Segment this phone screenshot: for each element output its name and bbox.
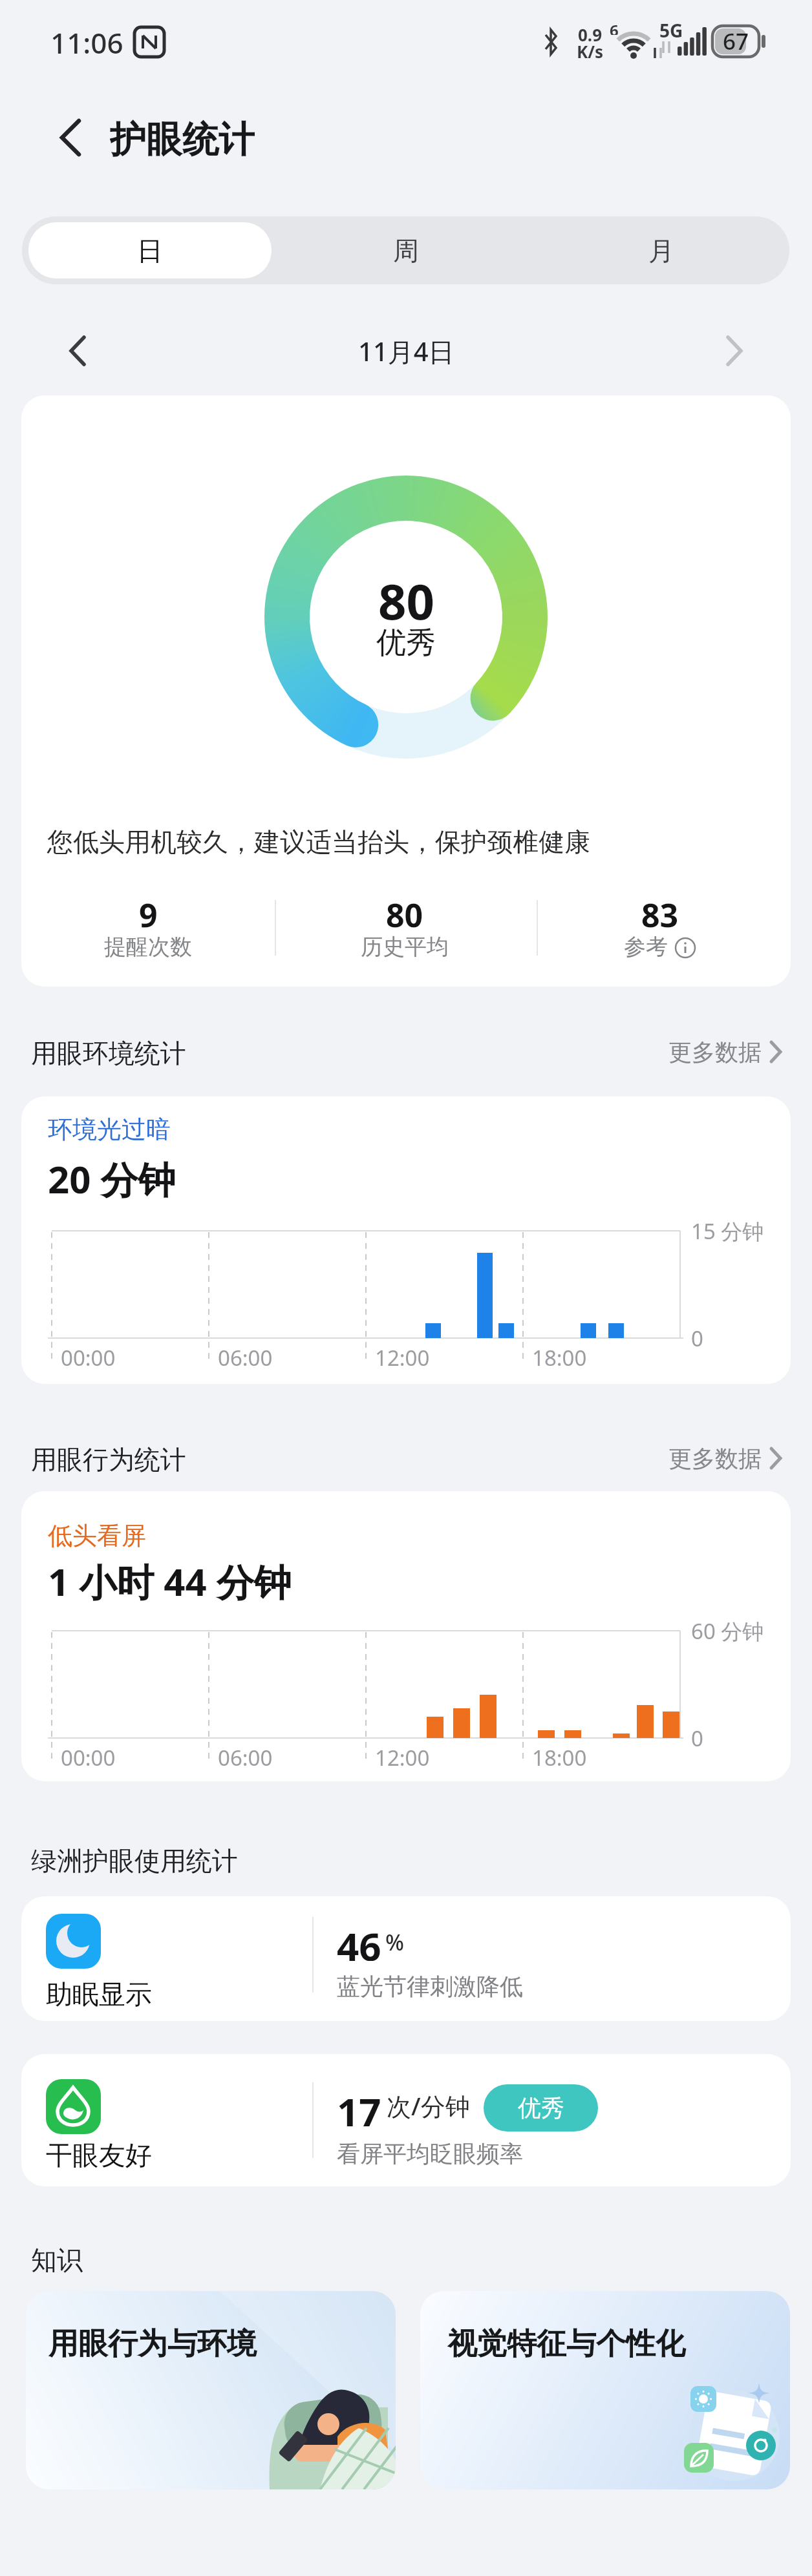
button[interactable]: 80: [21, 395, 791, 987]
staticText: 优秀: [376, 624, 436, 662]
staticText: 优秀: [518, 2093, 564, 2122]
staticText: 环境光过暗: [48, 1114, 171, 1145]
staticText: 提醒次数: [104, 933, 192, 961]
staticText: 绿洲护眼使用统计: [31, 1845, 238, 1874]
button[interactable]: [58, 326, 97, 375]
staticText: 次/分钟: [387, 2089, 470, 2122]
button[interactable]: [715, 326, 754, 375]
staticText: 低头看屏: [48, 1520, 146, 1551]
staticText: 用眼环境统计: [31, 1037, 186, 1067]
button[interactable]: 更多数据: [614, 1443, 782, 1473]
staticText: K/s: [577, 40, 604, 58]
staticText: 周: [393, 235, 419, 267]
staticText: 06:00: [218, 1343, 273, 1372]
staticText: 15 分钟: [691, 1217, 764, 1245]
staticText: 18:00: [532, 1743, 587, 1772]
staticText: 80: [386, 893, 423, 932]
staticText: 1 小时 44 分钟: [48, 1556, 292, 1604]
button[interactable]: [59, 119, 81, 156]
staticText: 用眼行为与环境: [48, 2325, 257, 2363]
button[interactable]: 环境光过暗: [21, 1096, 791, 1384]
button[interactable]: 干眼友好: [21, 2054, 791, 2186]
staticText: 60 分钟: [691, 1617, 764, 1645]
staticText: 助眠显示: [46, 1978, 152, 2011]
staticText: 历史平均: [361, 933, 449, 961]
staticText: 12:00: [375, 1343, 430, 1372]
staticText: 视觉特征与个性化: [447, 2325, 685, 2363]
staticText: 12:00: [375, 1743, 430, 1772]
button[interactable]: 周: [278, 216, 533, 284]
staticText: 参考: [624, 933, 668, 961]
staticText: 更多数据: [668, 1444, 762, 1473]
staticText: 17: [337, 2085, 381, 2126]
staticText: 用眼行为统计: [31, 1443, 186, 1473]
staticText: 0: [691, 1324, 703, 1352]
staticText: 干眼友好: [46, 2139, 152, 2172]
staticText: 0.9: [578, 23, 603, 41]
staticText: 0: [691, 1724, 703, 1752]
staticText: 67: [723, 26, 749, 57]
staticText: %: [385, 1927, 404, 1957]
staticText: 6: [610, 19, 619, 35]
button[interactable]: 月: [533, 216, 789, 284]
staticText: 00:00: [61, 1343, 116, 1372]
button[interactable]: 低头看屏: [21, 1491, 791, 1781]
staticText: 20 分钟: [48, 1153, 176, 1201]
staticText: 看屏平均眨眼频率: [337, 2139, 523, 2168]
button[interactable]: 日: [28, 222, 272, 278]
staticText: 11:06: [50, 23, 123, 59]
staticText: 06:00: [218, 1743, 273, 1772]
staticText: 00:00: [61, 1743, 116, 1772]
button[interactable]: 助眠显示: [21, 1896, 791, 2021]
staticText: 日: [137, 235, 163, 267]
staticText: 护眼统计: [110, 117, 255, 162]
button[interactable]: 更多数据: [614, 1037, 782, 1067]
button[interactable]: 用眼行为与环境: [26, 2291, 396, 2489]
staticText: 您低头用机较久，建议适当抬头，保护颈椎健康: [47, 826, 590, 858]
staticText: 80: [378, 567, 434, 625]
staticText: 11月4日: [358, 333, 454, 369]
staticText: 9: [139, 893, 158, 932]
staticText: 46: [337, 1920, 381, 1961]
staticText: 蓝光节律刺激降低: [337, 1972, 523, 2001]
staticText: 月: [648, 235, 674, 267]
button[interactable]: 视觉特征与个性化: [420, 2291, 790, 2489]
staticText: 18:00: [532, 1343, 587, 1372]
staticText: 5G: [659, 18, 683, 37]
staticText: 83: [641, 893, 679, 932]
staticText: 知识: [31, 2244, 83, 2274]
staticText: 更多数据: [668, 1038, 762, 1067]
